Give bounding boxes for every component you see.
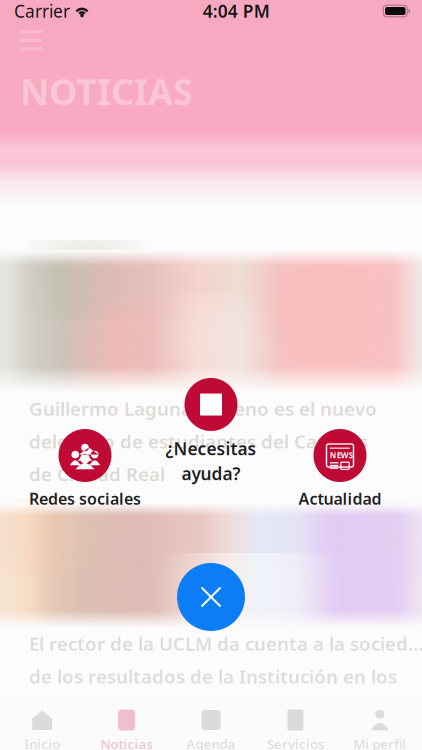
button[interactable]: ¿Necesitas: [136, 378, 286, 485]
button[interactable]: NEWS: [265, 429, 415, 509]
staticText: ayuda?: [181, 462, 240, 485]
staticText: delegado de estudiantes del Campus: [29, 429, 368, 454]
staticText: Servicios: [267, 735, 324, 750]
staticText: Mi perfil: [353, 735, 406, 750]
staticText: NEWS: [330, 450, 353, 460]
staticText: Inicio: [24, 735, 60, 750]
staticText: Noticias: [101, 735, 153, 750]
button[interactable]: Redes sociales: [10, 429, 160, 509]
staticText: de Ciudad Real: [29, 462, 165, 486]
staticText: 4:04 PM: [203, 0, 270, 22]
staticText: Redes sociales: [29, 488, 141, 509]
staticText: últimos cuatro años: [29, 697, 212, 721]
staticText: Agenda: [186, 735, 235, 750]
staticText: de los resultados de la Institución en l…: [29, 664, 397, 689]
staticText: Carrier: [14, 0, 70, 22]
staticText: El rector de la UCLM da cuenta a la soci…: [29, 631, 422, 656]
staticText: ¿Necesitas: [165, 437, 256, 460]
staticText: Actualidad: [298, 488, 381, 509]
staticText: Guillermo Laguna Moreno es el nuevo: [29, 396, 377, 421]
button[interactable]: Cerrar: [177, 563, 245, 631]
staticText: NOTICIAS: [20, 67, 193, 115]
